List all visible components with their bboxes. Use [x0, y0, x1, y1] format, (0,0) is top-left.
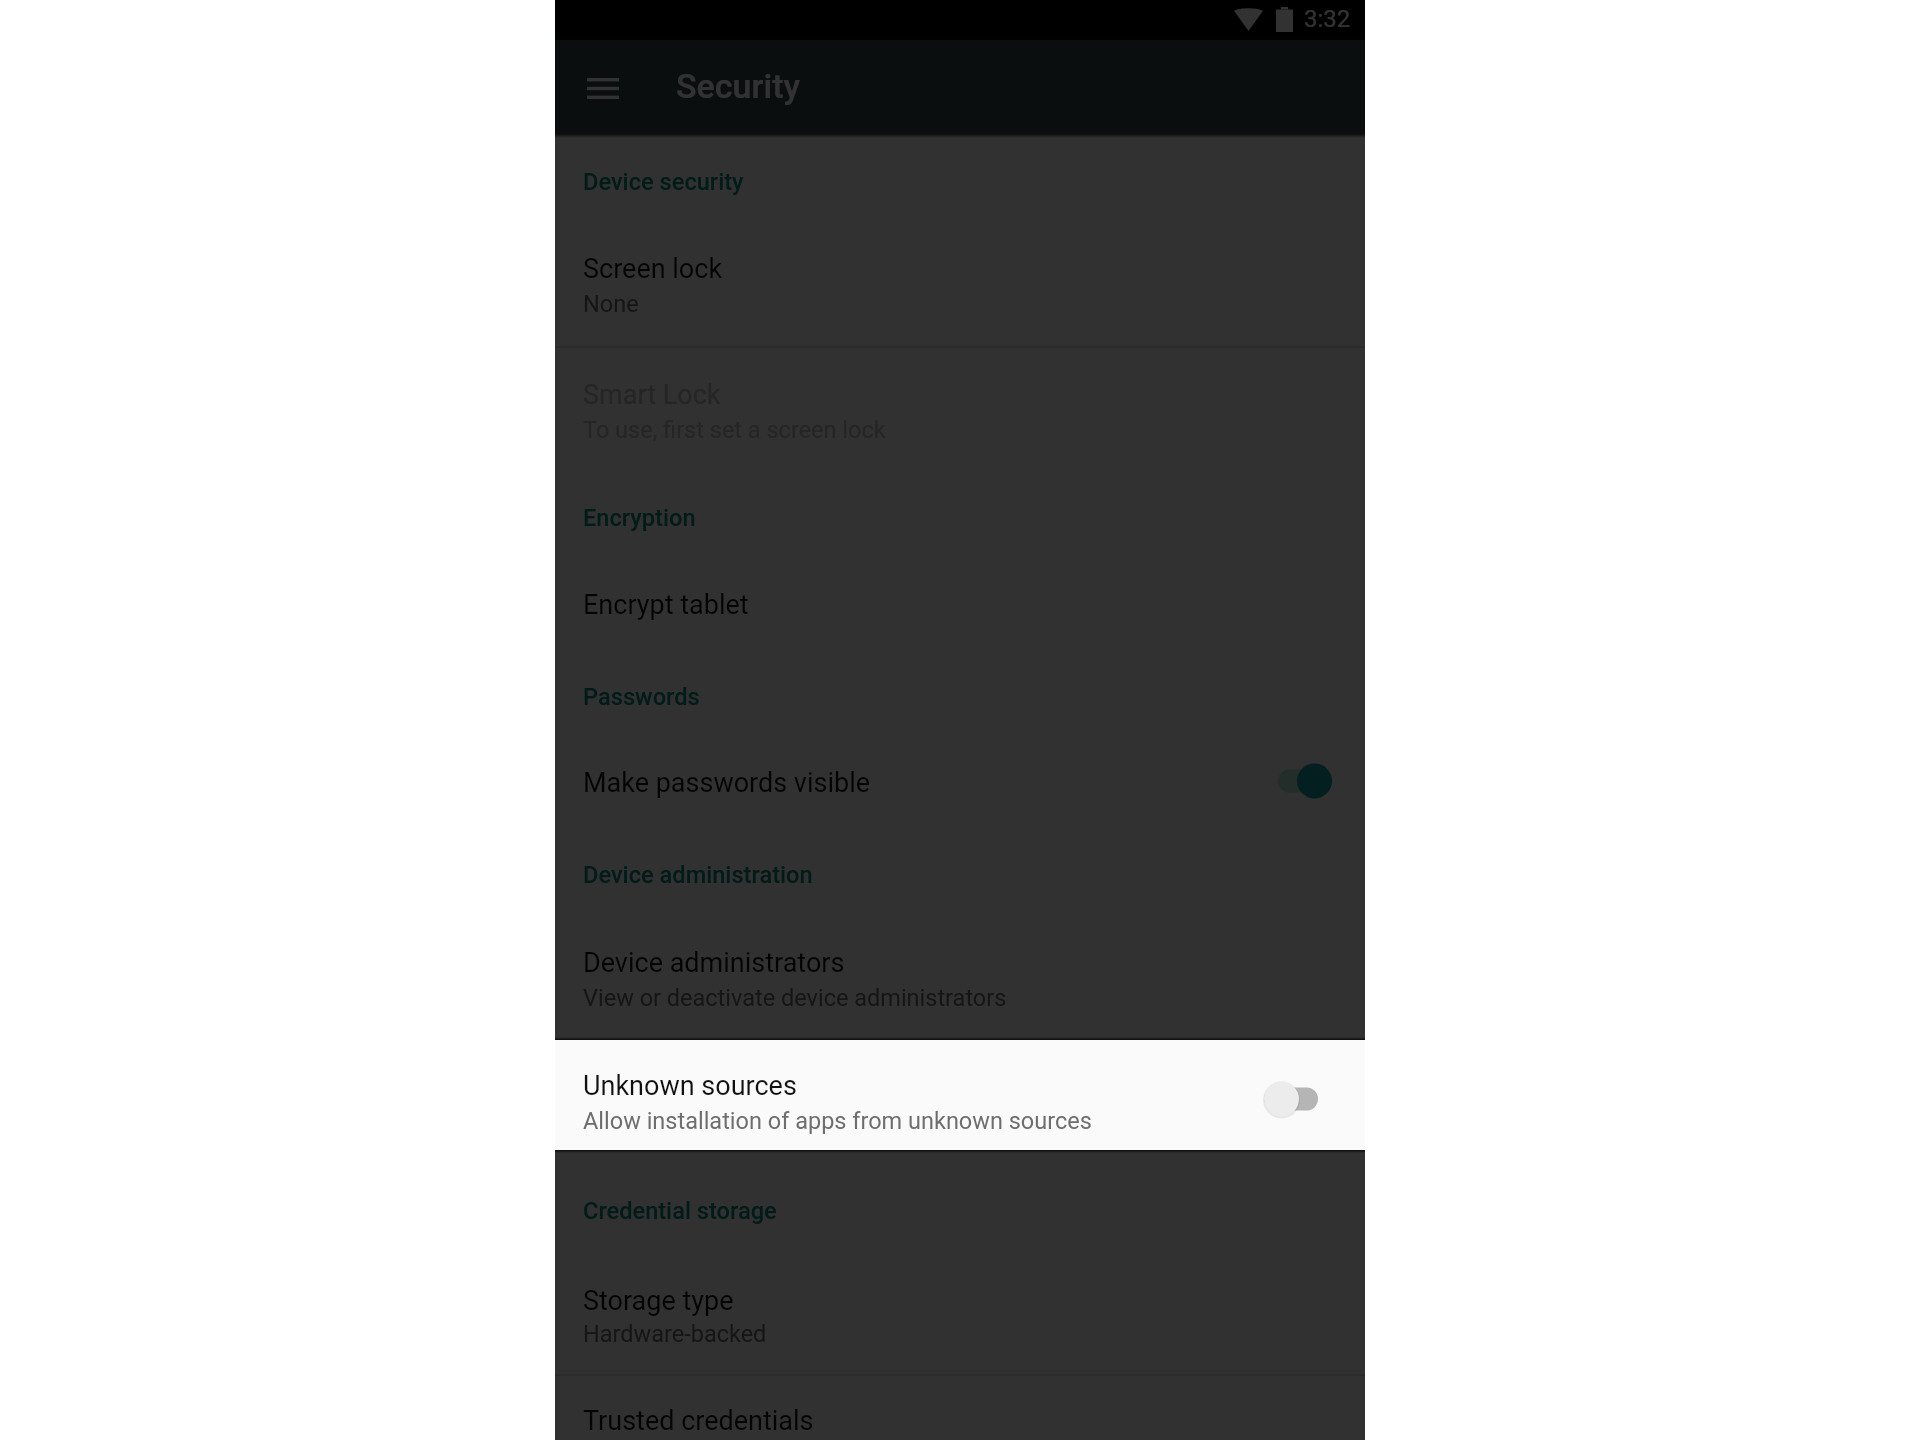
staticText: Screen lock: [583, 253, 723, 285]
staticText: Device security: [583, 168, 744, 196]
staticText: Passwords: [583, 683, 700, 711]
button[interactable]: Trusted credentials: [555, 1377, 1365, 1440]
staticText: 3:32: [1304, 5, 1351, 33]
staticText: Allow installation of apps from unknown …: [583, 1107, 1092, 1135]
staticText: Credential storage: [583, 1197, 777, 1225]
button[interactable]: Unknown sources, off: [1264, 1072, 1318, 1126]
staticText: View or deactivate device administrators: [583, 984, 1007, 1012]
staticText: Unknown sources: [583, 1070, 797, 1102]
staticText: Trusted credentials: [583, 1405, 814, 1437]
staticText: Security: [676, 66, 801, 106]
staticText: Hardware-backed: [583, 1320, 767, 1348]
button[interactable]: Unknown sources: [555, 1040, 1365, 1150]
staticText: To use, first set a screen lock: [583, 416, 886, 444]
button[interactable]: Open navigation drawer: [572, 57, 634, 119]
button[interactable]: Make passwords visible: [555, 739, 1365, 811]
button[interactable]: Storage type: [555, 1257, 1365, 1329]
button[interactable]: Screen lock: [555, 225, 1365, 297]
staticText: Storage type: [583, 1285, 734, 1317]
staticText: Device administrators: [583, 947, 845, 979]
staticText: Device administration: [583, 861, 813, 889]
button[interactable]: Encrypt tablet: [555, 561, 1365, 633]
button[interactable]: Device administrators: [555, 919, 1365, 991]
button[interactable]: Make passwords visible, on: [1278, 754, 1332, 808]
staticText: Make passwords visible: [583, 767, 871, 799]
staticText: None: [583, 290, 639, 318]
staticText: Encrypt tablet: [583, 589, 749, 621]
staticText: Smart Lock: [583, 379, 721, 411]
staticText: Encryption: [583, 504, 696, 532]
